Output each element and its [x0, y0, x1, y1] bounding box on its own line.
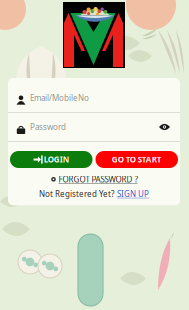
staticText: GO TO START	[112, 154, 162, 165]
button[interactable]: Show password	[153, 118, 176, 136]
staticText: FORGOT PASSWORD ?	[58, 174, 137, 185]
button[interactable]: GO TO START	[95, 151, 178, 168]
button[interactable]: SIGN UP	[117, 189, 149, 199]
staticText: Email/MobileNo	[30, 93, 89, 103]
button[interactable]: LOGIN	[10, 151, 92, 168]
staticText: Password	[30, 122, 66, 132]
button[interactable]: FORGOT PASSWORD ?	[50, 168, 137, 189]
staticText: LOGIN	[44, 154, 70, 165]
staticText: Not Registered Yet?	[39, 189, 114, 199]
staticText: SIGN UP	[117, 189, 149, 199]
